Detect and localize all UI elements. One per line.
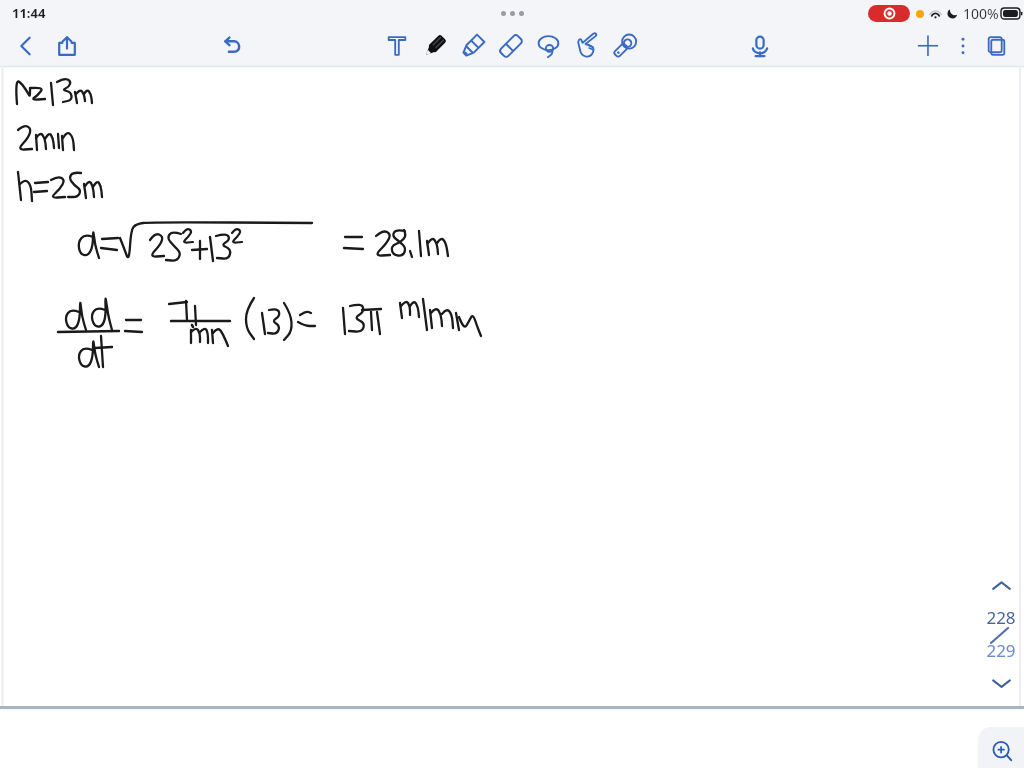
staticText: 100% xyxy=(963,4,999,23)
button[interactable]: Add xyxy=(910,27,948,65)
staticText: 229 xyxy=(986,639,1016,662)
button[interactable]: More options xyxy=(948,27,978,65)
button[interactable]: Undo xyxy=(213,27,251,65)
button[interactable]: Next page xyxy=(979,669,1023,697)
button[interactable]: Pages xyxy=(978,27,1016,65)
button[interactable]: Eraser tool xyxy=(492,27,530,65)
button[interactable]: Record audio xyxy=(741,27,779,65)
button[interactable]: Lasso tool xyxy=(530,27,568,65)
staticText: 228 xyxy=(986,606,1016,629)
button[interactable]: Laser pointer tool xyxy=(606,27,644,65)
button[interactable]: Zoom in xyxy=(978,727,1024,768)
button[interactable]: Back xyxy=(7,27,45,65)
button[interactable]: Highlighter tool xyxy=(454,27,492,65)
button[interactable]: Text tool xyxy=(378,27,416,65)
button[interactable]: Hand tool xyxy=(568,27,606,65)
button[interactable]: Pen tool xyxy=(416,27,454,65)
button[interactable]: Share xyxy=(48,27,86,65)
staticText: 11:44 xyxy=(12,4,46,22)
button[interactable]: Previous page xyxy=(979,571,1023,599)
